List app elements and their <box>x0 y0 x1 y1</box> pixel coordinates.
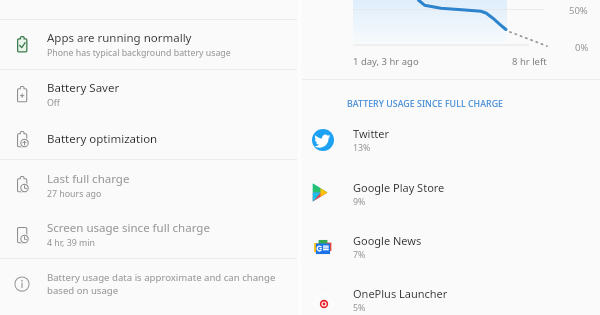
staticText: Phone has typical background battery usa… <box>47 47 231 59</box>
staticText: 27 hours ago <box>47 188 102 200</box>
button[interactable]: Battery Saver <box>0 70 300 115</box>
staticText: Last full charge <box>47 171 130 187</box>
button[interactable]: Battery optimization <box>0 115 300 159</box>
staticText: 8 hr left <box>512 55 547 68</box>
button[interactable]: Screen usage since full charge <box>0 209 300 258</box>
staticText: 13% <box>353 142 371 154</box>
staticText: Battery usage data is approximate and ca… <box>47 271 283 297</box>
staticText: Battery Saver <box>47 80 120 96</box>
button[interactable]: Last full charge <box>0 160 300 209</box>
staticText: 5% <box>353 302 366 314</box>
staticText: Off <box>47 97 60 109</box>
staticText: 1 day, 3 hr ago <box>353 55 419 68</box>
staticText: 50% <box>569 4 588 17</box>
staticText: 7% <box>353 249 366 261</box>
staticText: Google Play Store <box>353 180 445 195</box>
staticText: 0% <box>575 41 589 54</box>
button[interactable]: Apps are running normally <box>0 20 300 69</box>
staticText: Screen usage since full charge <box>47 220 210 236</box>
staticText: Apps are running normally <box>47 30 192 46</box>
staticText: OnePlus Launcher <box>353 286 448 301</box>
staticText: Twitter <box>353 126 390 141</box>
staticText: 4 hr, 39 min <box>47 237 95 249</box>
staticText: 9% <box>353 196 366 208</box>
button[interactable]: Google News <box>300 222 600 274</box>
staticText: Google News <box>353 233 422 248</box>
staticText: Battery optimization <box>47 131 158 147</box>
staticText: BATTERY USAGE SINCE FULL CHARGE <box>347 98 504 110</box>
button[interactable]: OnePlus Launcher <box>300 275 600 315</box>
button[interactable]: Twitter <box>300 115 600 167</box>
button[interactable]: Google Play Store <box>300 169 600 221</box>
